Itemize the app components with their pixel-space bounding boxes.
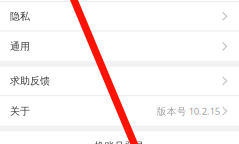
staticText: 隐私: [10, 10, 30, 23]
button[interactable]: 关于: [0, 96, 239, 126]
button[interactable]: 隐私: [0, 2, 239, 32]
button[interactable]: 通用: [0, 32, 239, 61]
staticText: 关于: [10, 105, 30, 117]
button[interactable]: 求助反馈: [0, 67, 239, 96]
staticText: 换账号登录: [94, 140, 144, 144]
staticText: 版本号 10.2.15: [157, 104, 220, 118]
staticText: 求助反馈: [10, 75, 50, 87]
button[interactable]: 换账号登录: [0, 131, 239, 144]
staticText: 通用: [10, 40, 30, 53]
